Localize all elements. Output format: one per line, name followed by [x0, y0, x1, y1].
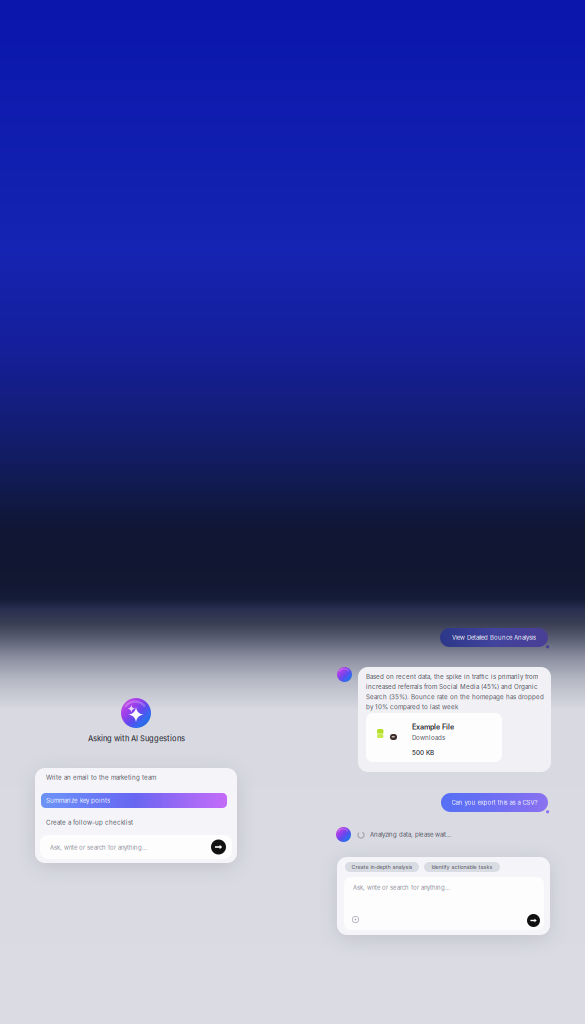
staticText: Can you export this as a CSV?	[451, 799, 537, 806]
button[interactable]: Create a follow-up checklist	[41, 815, 232, 830]
button[interactable]: Attach	[350, 914, 361, 925]
staticText: Ask, write or search for anything…	[353, 884, 450, 891]
staticText: View Detailed Bounce Analysis	[452, 634, 536, 641]
button[interactable]: Send	[211, 839, 226, 854]
button[interactable]: Send	[527, 914, 540, 927]
button[interactable]: Summarize key points	[41, 793, 227, 808]
staticText: Downloads	[412, 734, 445, 741]
staticText: Based on recent data, the spike in traff…	[366, 673, 544, 711]
staticText: Asking with AI Suggestions	[88, 734, 185, 743]
staticText: Ask, write or search for anything…	[50, 844, 147, 851]
button[interactable]: Identify actionable tasks	[424, 862, 500, 872]
staticText: Example File	[412, 722, 454, 731]
staticText: Analyzing data, please wait…	[370, 831, 451, 838]
button[interactable]: Write an email to the marketing team	[41, 770, 232, 785]
staticText: Create a follow-up checklist	[46, 819, 133, 826]
button[interactable]: Create in-depth analysis	[345, 862, 419, 872]
button[interactable]: View Detailed Bounce Analysis	[440, 628, 550, 649]
staticText: Create in-depth analysis	[351, 864, 412, 870]
button[interactable]: Can you export this as a CSV?	[441, 793, 550, 814]
staticText: Identify actionable tasks	[431, 864, 492, 870]
staticText: 500 KB	[412, 749, 434, 756]
staticText: Summarize key points	[46, 797, 110, 804]
staticText: Write an email to the marketing team	[46, 774, 156, 781]
